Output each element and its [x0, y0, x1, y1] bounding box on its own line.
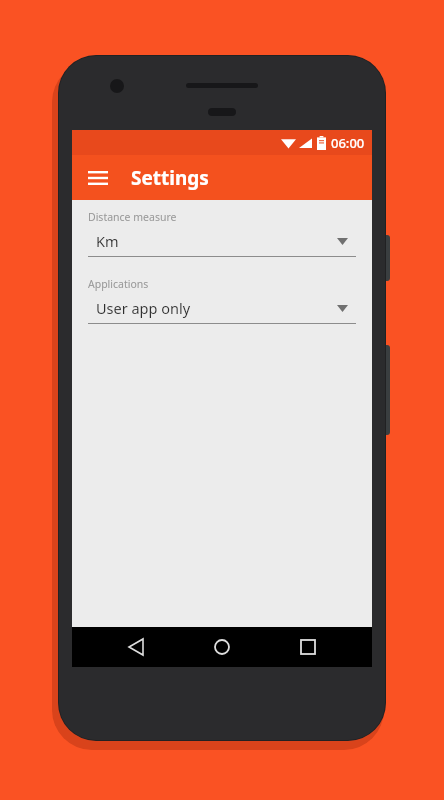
button[interactable]: Open navigation drawer: [80, 160, 116, 196]
button[interactable]: Home: [200, 627, 244, 667]
staticText: Km: [96, 231, 337, 251]
staticText: 06:00: [331, 134, 365, 152]
button[interactable]: Km: [88, 231, 356, 251]
staticText: User app only: [96, 298, 337, 318]
staticText: Settings: [131, 165, 209, 191]
staticText: Applications: [88, 277, 149, 291]
button[interactable]: Back: [114, 627, 158, 667]
staticText: Distance measure: [88, 210, 177, 224]
button[interactable]: User app only: [88, 298, 356, 318]
button[interactable]: Recent apps: [286, 627, 330, 667]
